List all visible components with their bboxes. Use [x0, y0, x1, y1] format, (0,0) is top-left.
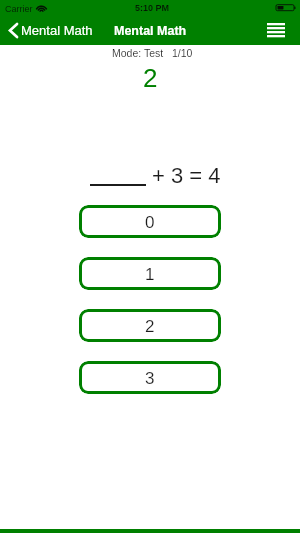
staticText: 1	[145, 265, 155, 284]
staticText: 3	[145, 369, 155, 388]
button[interactable]: 0	[79, 205, 221, 238]
staticText: 5:10 PM	[135, 3, 170, 13]
staticText: 0	[145, 213, 155, 232]
staticText: + 3 = 4	[152, 163, 221, 188]
button[interactable]: 2	[79, 309, 221, 342]
staticText: Carrier	[5, 4, 33, 14]
staticText: 2	[145, 317, 155, 336]
button[interactable]: Menu	[261, 18, 291, 43]
button[interactable]: 1	[79, 257, 221, 290]
staticText: Mental Math	[114, 24, 187, 38]
staticText: Mode: Test 1/10	[112, 47, 193, 59]
staticText: Mental Math	[21, 23, 93, 38]
staticText: 2	[143, 63, 158, 92]
button[interactable]: Mental Math	[4, 18, 99, 43]
button[interactable]: 3	[79, 361, 221, 394]
